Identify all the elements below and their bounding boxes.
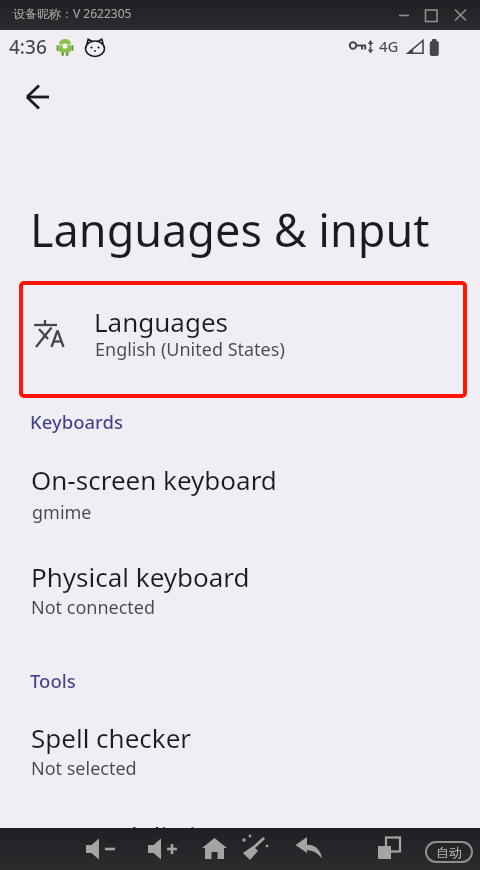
button[interactable] [294,835,326,863]
staticText: 自动 [436,844,462,860]
staticText: gmime [32,500,92,525]
button[interactable]: 自动 [425,841,473,863]
button[interactable] [448,4,472,28]
button[interactable] [16,85,60,109]
staticText: Personal dictionary [31,818,267,853]
button[interactable] [376,836,404,862]
button[interactable]: Languages [19,281,467,398]
staticText: Languages [94,304,229,339]
staticText: On-screen keyboard [31,462,277,497]
button[interactable] [86,835,124,863]
staticText: Languages & input [30,199,430,260]
button[interactable]: On-screen keyboard [0,450,480,540]
staticText: 4G [379,36,399,56]
staticText: Not selected [31,756,137,781]
staticText: Not connected [31,595,156,620]
staticText: Spell checker [31,720,192,755]
button[interactable]: Physical keyboard [0,547,480,637]
staticText: Physical keyboard [31,559,250,594]
staticText: 4:36 [9,34,47,60]
staticText: Tools [30,668,76,693]
button[interactable] [392,4,416,28]
button[interactable]: Spell checker [0,708,480,798]
button[interactable] [148,835,186,863]
button[interactable] [238,833,270,863]
staticText: English (United States) [95,337,285,362]
staticText: 设备昵称：V 2622305 [13,5,132,21]
button[interactable] [419,4,443,28]
button[interactable] [201,835,229,863]
staticText: Keyboards [30,409,123,434]
